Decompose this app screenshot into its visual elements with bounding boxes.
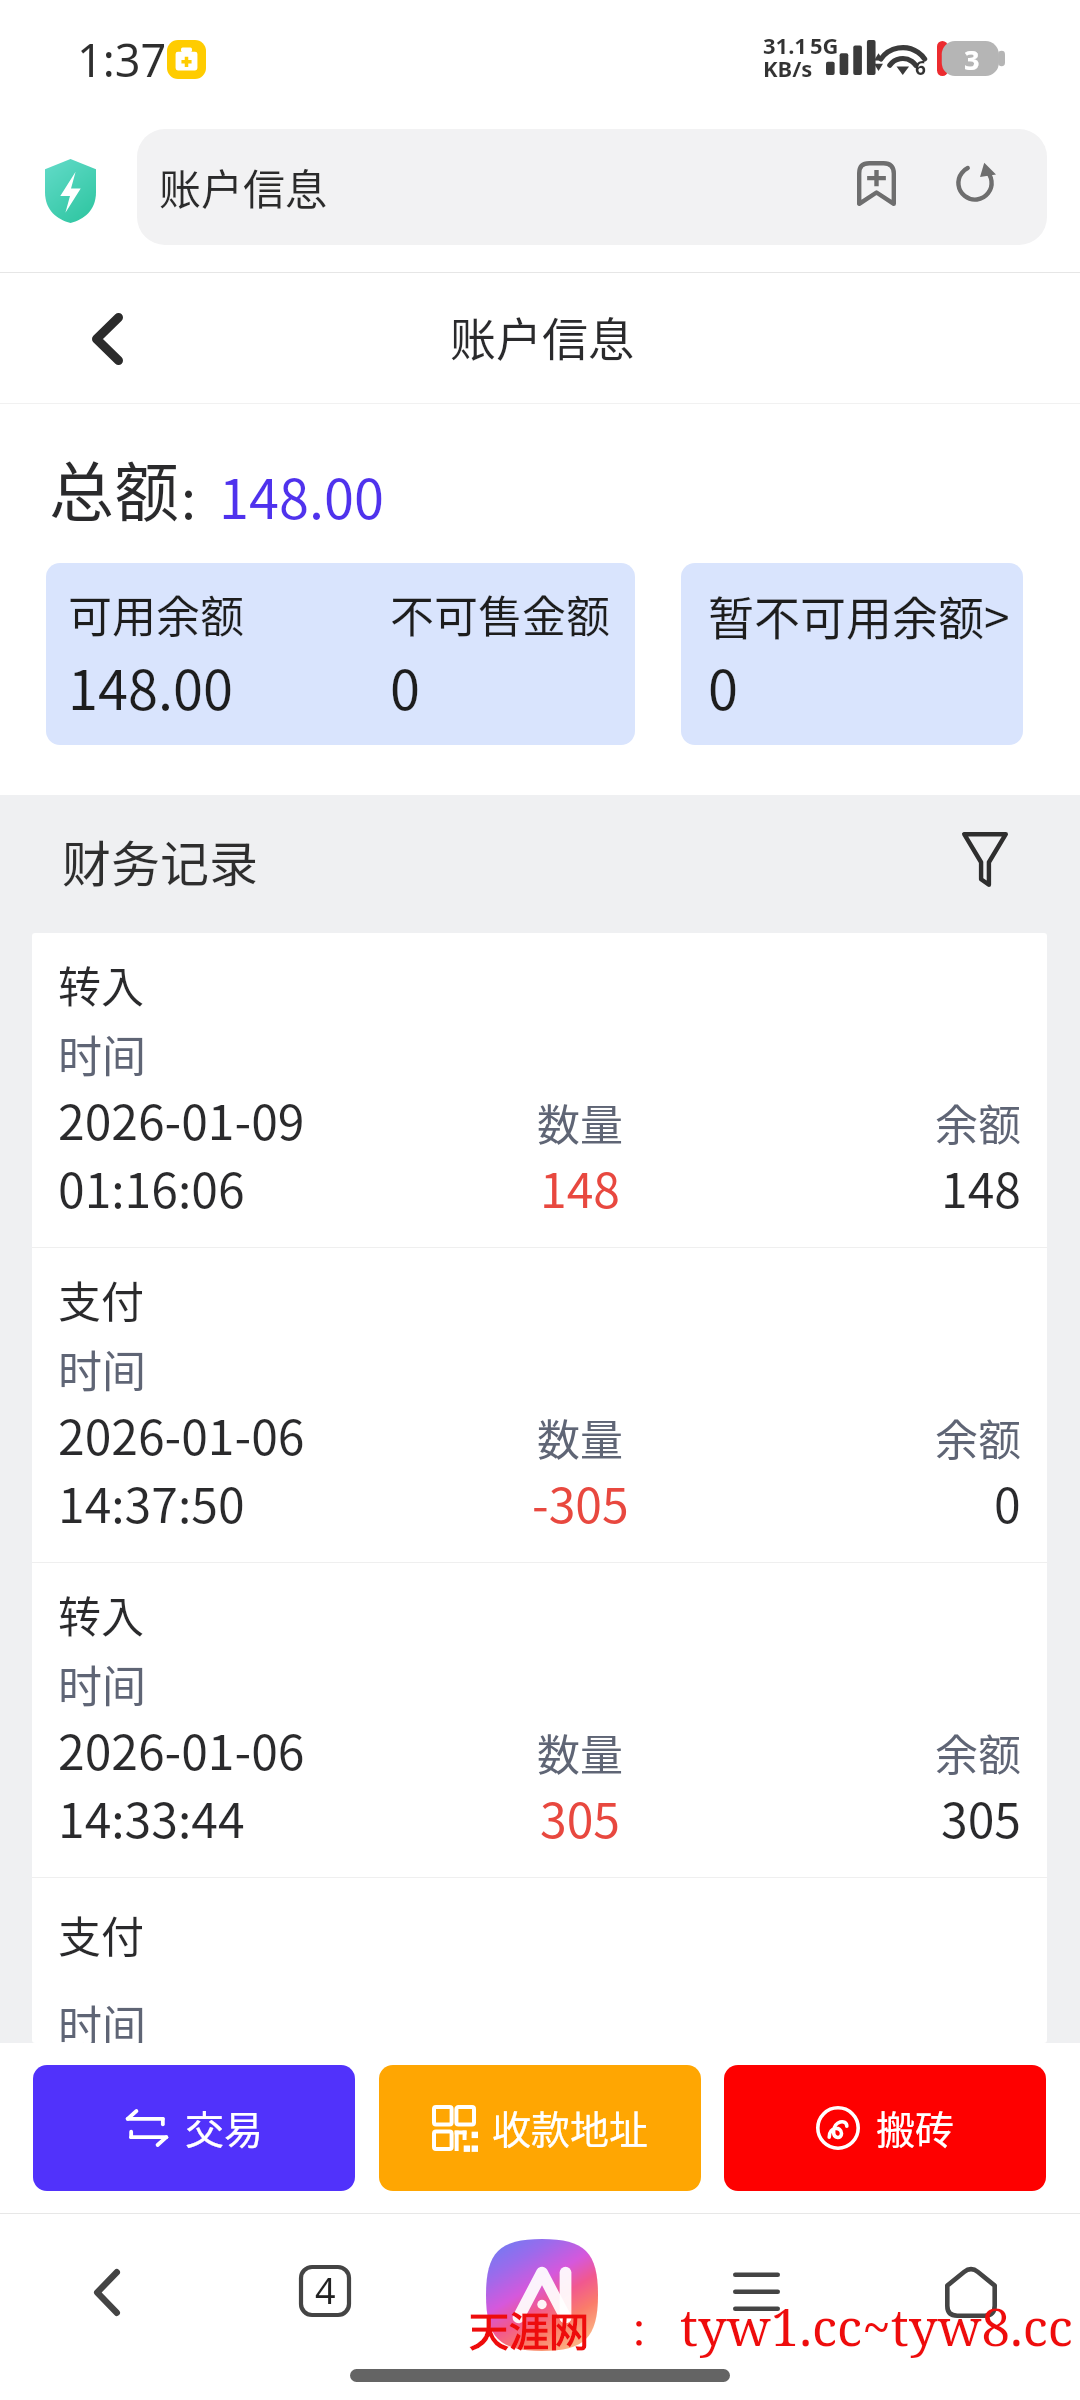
button[interactable]: Menu: [733, 2271, 780, 2313]
button[interactable]: 暂不可用余额>: [681, 563, 1023, 745]
staticText: 账户信息: [159, 156, 328, 217]
staticText: 不可售金额: [390, 582, 610, 646]
staticText: 财务记录: [62, 825, 259, 896]
staticText: 时间: [58, 1337, 146, 1401]
staticText: 148: [941, 1152, 1021, 1222]
staticText: 148.00: [68, 647, 233, 725]
staticText: -305: [532, 1467, 629, 1537]
staticText: 账户信息: [450, 303, 634, 370]
staticText: 数量: [537, 1406, 623, 1468]
staticText: 2026-01-09: [58, 1084, 305, 1154]
staticText: KB/s: [763, 53, 813, 83]
button[interactable]: Tabs: 4 open: [299, 2265, 351, 2317]
staticText: 3: [964, 41, 980, 76]
staticText: 天涯网: [469, 2300, 589, 2358]
staticText: 数量: [537, 1721, 623, 1783]
staticText: 01:16:06: [58, 1152, 245, 1222]
staticText: 余额: [935, 1721, 1021, 1783]
button[interactable]: 搬砖: [724, 2065, 1046, 2191]
staticText: 收款地址: [492, 2099, 649, 2155]
staticText: 交易: [185, 2099, 264, 2155]
staticText: 2026-01-06: [58, 1399, 305, 1469]
staticText: 14:37:50: [58, 1467, 245, 1537]
staticText: tyw1.cc~tyw8.cc: [680, 2291, 1073, 2360]
staticText: 支付: [58, 1268, 144, 1330]
staticText: 2026-01-06: [58, 1714, 305, 1784]
button[interactable]: Back: [66, 299, 148, 379]
staticText: 148.00: [219, 456, 384, 534]
button[interactable]: 交易: [33, 2065, 355, 2191]
staticText: :: [181, 456, 197, 534]
staticText: 转入: [58, 953, 144, 1015]
staticText: 0: [708, 647, 738, 725]
staticText: 暂不可用余额>: [708, 582, 1010, 649]
button[interactable]: 转入: [32, 933, 1047, 1247]
staticText: 148: [540, 1152, 620, 1222]
staticText: 1:37: [77, 29, 167, 90]
button[interactable]: App home: [486, 2239, 598, 2351]
button[interactable]: 可用余额: [46, 563, 635, 745]
staticText: 搬砖: [876, 2099, 955, 2155]
button[interactable]: 支付: [32, 1878, 1047, 2043]
button[interactable]: Refresh: [940, 159, 1010, 207]
button[interactable]: 转入: [32, 1563, 1047, 1877]
staticText: 时间: [58, 1022, 146, 1086]
button[interactable]: 收款地址: [379, 2065, 701, 2191]
staticText: 总额: [49, 441, 180, 535]
staticText: 31.1: [763, 30, 807, 60]
staticText: 5G: [810, 30, 839, 60]
staticText: 305: [941, 1782, 1021, 1852]
button[interactable]: Security shield: [45, 159, 96, 223]
button[interactable]: 账户信息: [137, 129, 1047, 245]
staticText: 6: [915, 55, 926, 81]
staticText: ：: [620, 2303, 659, 2358]
staticText: 时间: [58, 1992, 146, 2043]
staticText: 支付: [58, 1903, 144, 1965]
staticText: 305: [540, 1782, 620, 1852]
staticText: 14:33:44: [58, 1782, 245, 1852]
staticText: 数量: [537, 1091, 623, 1153]
button[interactable]: 支付: [32, 1248, 1047, 1562]
staticText: 0: [994, 1467, 1021, 1537]
staticText: 时间: [58, 1652, 146, 1716]
staticText: 转入: [58, 1583, 144, 1645]
button[interactable]: Back: [94, 2269, 120, 2316]
staticText: 4: [315, 2266, 336, 2315]
staticText: 0: [390, 647, 420, 725]
staticText: 余额: [935, 1406, 1021, 1468]
button[interactable]: Home: [945, 2264, 997, 2318]
staticText: 余额: [935, 1091, 1021, 1153]
staticText: 可用余额: [68, 582, 244, 646]
button[interactable]: Filter: [946, 821, 1024, 897]
button[interactable]: Add bookmark: [841, 159, 911, 207]
